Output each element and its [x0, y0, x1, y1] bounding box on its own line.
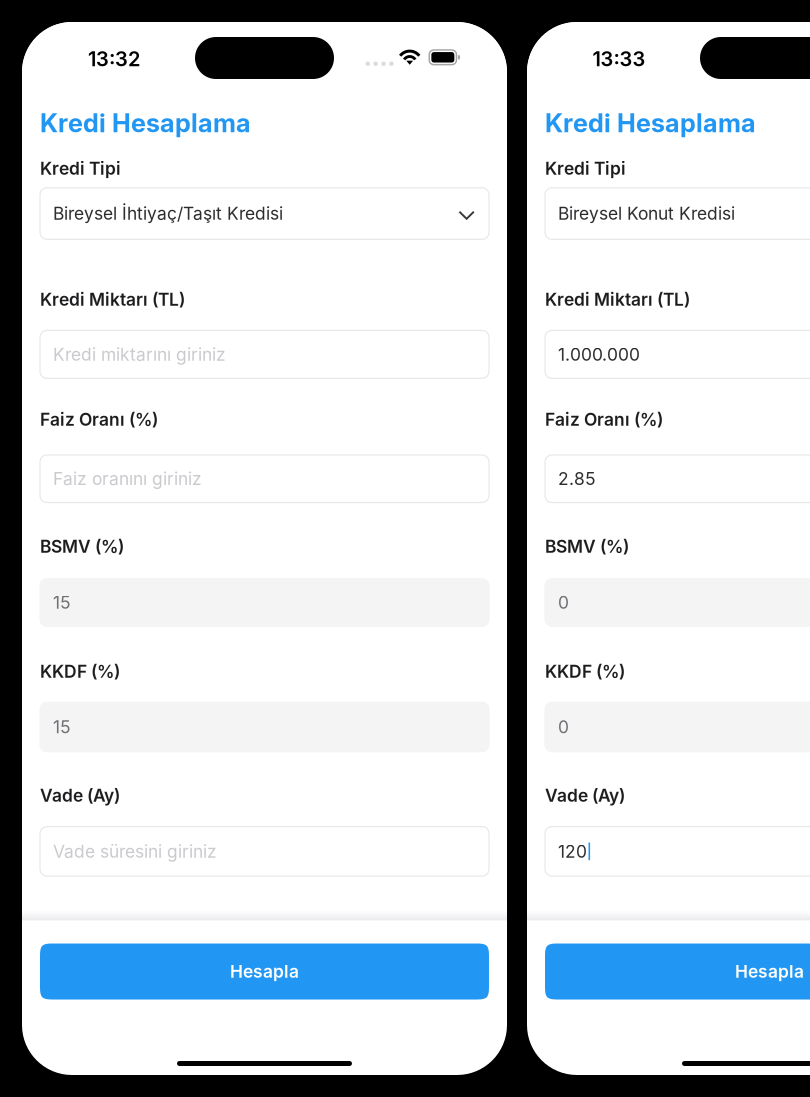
staticText: Kredi Hesaplama — [40, 108, 251, 138]
staticText: 0 — [558, 717, 569, 737]
staticText: Vade (Ay) — [40, 785, 120, 806]
staticText: Kredi Hesaplama — [545, 108, 756, 138]
staticText: BSMV (%) — [40, 536, 124, 557]
staticText: Faiz Oranı (%) — [545, 409, 663, 430]
staticText: 0 — [558, 592, 569, 613]
staticText: 13:33 — [592, 47, 645, 71]
staticText: 2.85 — [558, 468, 596, 489]
staticText: KKDF (%) — [40, 661, 120, 682]
staticText: 15 — [53, 592, 71, 613]
staticText: Hesapla — [735, 961, 804, 982]
staticText: Faiz Oranı (%) — [40, 409, 158, 430]
staticText: KKDF (%) — [545, 661, 625, 682]
staticText: Kredi miktarını giriniz — [53, 344, 226, 365]
staticText: Kredi Tipi — [545, 158, 626, 179]
staticText: Vade (Ay) — [545, 785, 625, 806]
staticText: Bireysel İhtiyaç/Taşıt Kredisi — [53, 203, 283, 224]
button[interactable]: Hesapla — [545, 943, 810, 999]
staticText: Faiz oranını giriniz — [53, 468, 202, 489]
staticText: Kredi Tipi — [40, 158, 121, 179]
staticText: BSMV (%) — [545, 536, 629, 557]
button[interactable]: Hesapla — [40, 943, 489, 999]
staticText: Kredi Miktarı (TL) — [545, 289, 690, 310]
staticText: 1.000.000 — [558, 344, 640, 365]
staticText: Vade süresini giriniz — [53, 841, 217, 861]
staticText: Bireysel Konut Kredisi — [558, 203, 735, 224]
staticText: Kredi Miktarı (TL) — [40, 289, 185, 310]
staticText: 13:32 — [88, 47, 140, 71]
staticText: 120 — [558, 841, 587, 861]
staticText: 15 — [53, 717, 71, 737]
staticText: Hesapla — [230, 961, 299, 982]
